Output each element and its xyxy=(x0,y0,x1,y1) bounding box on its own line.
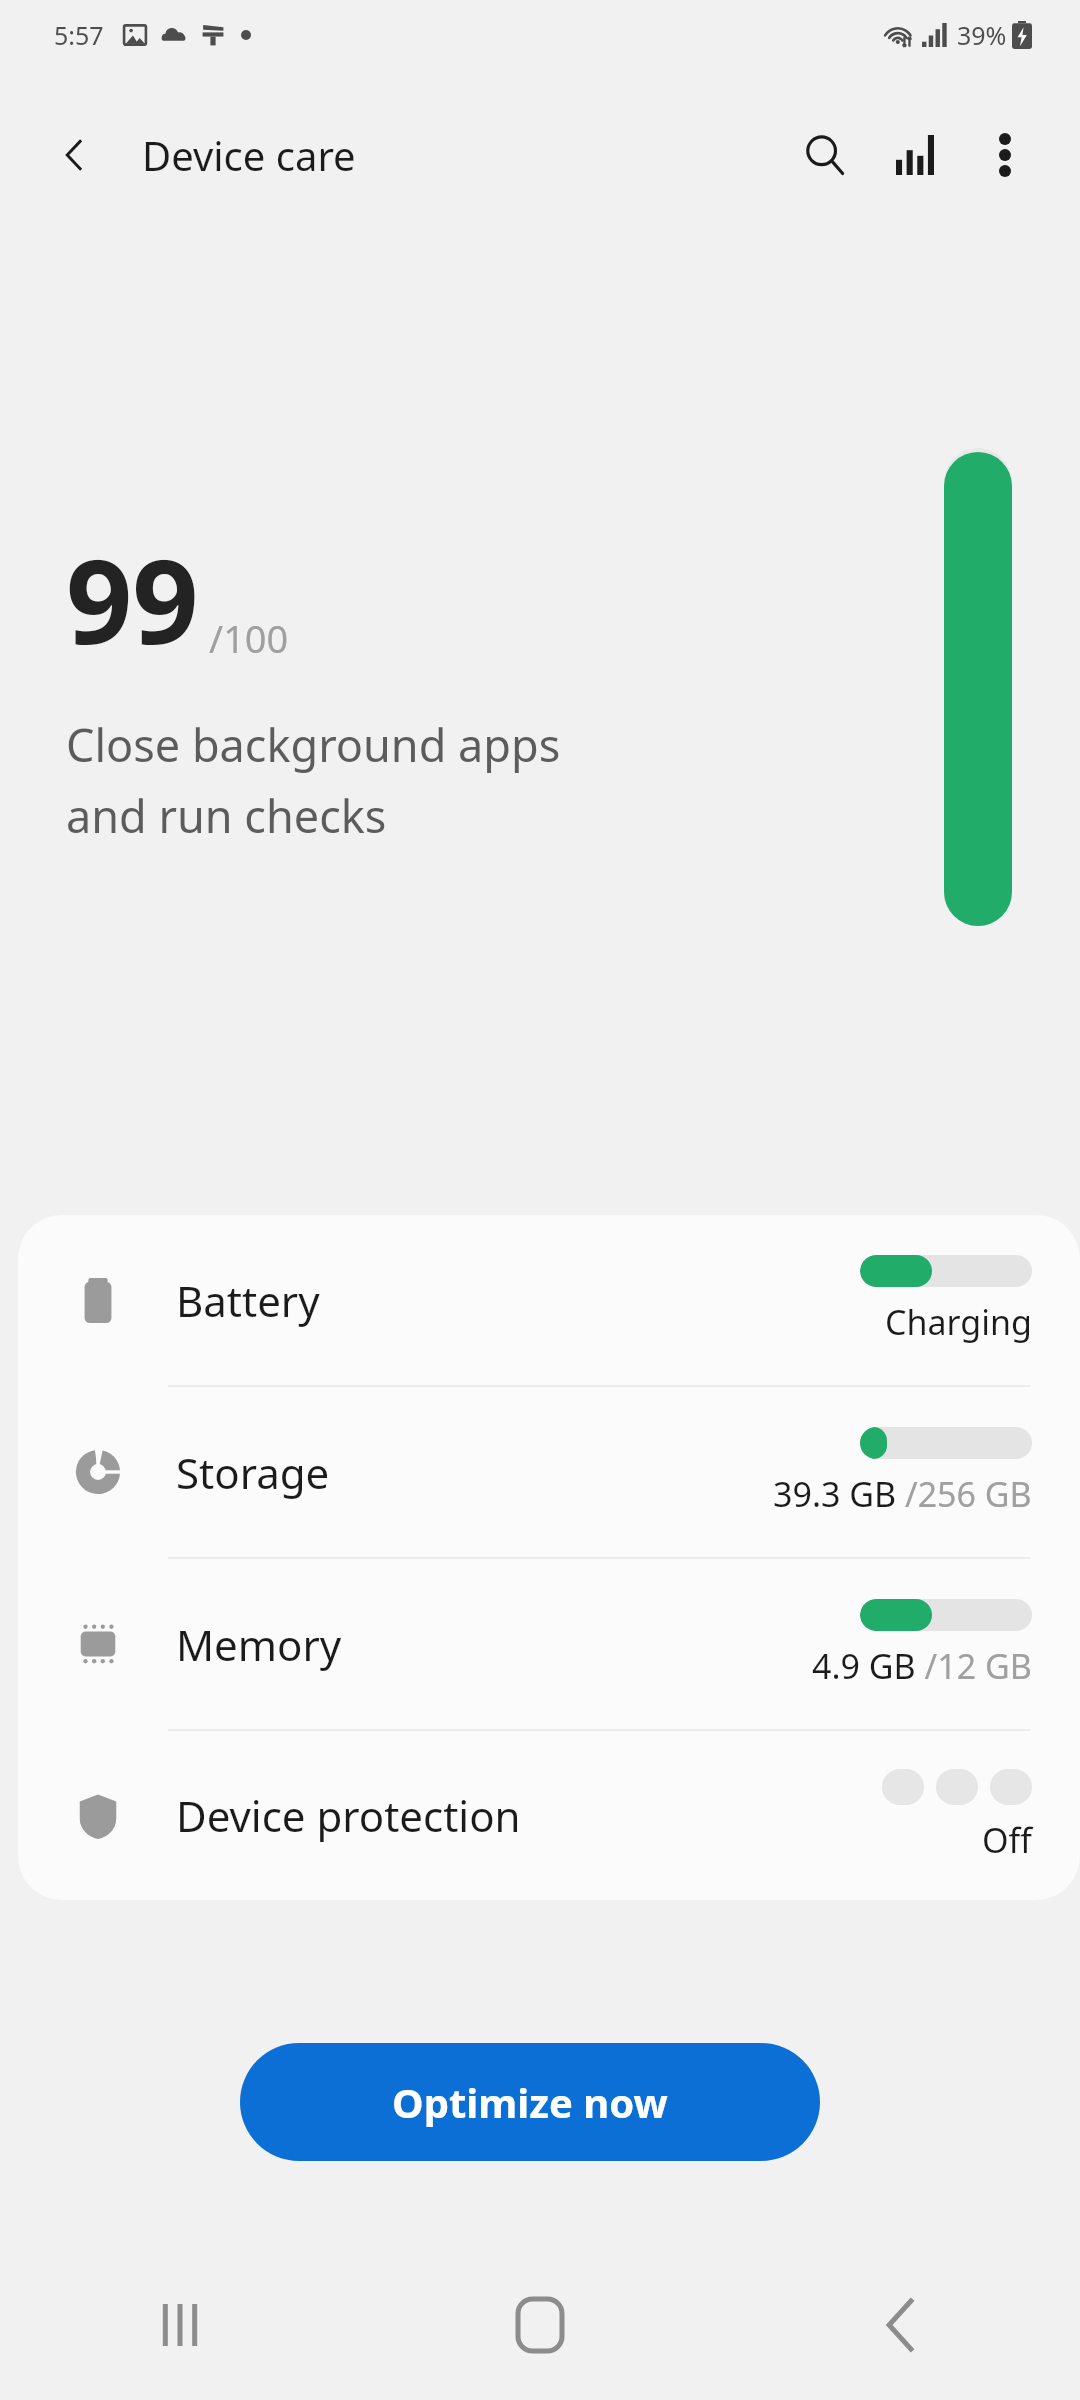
button[interactable]: Back xyxy=(720,2250,1080,2400)
staticText: Storage xyxy=(176,1444,330,1501)
staticText: Memory xyxy=(176,1616,342,1673)
button[interactable]: Recent apps xyxy=(0,2250,360,2400)
staticText: Battery xyxy=(176,1272,320,1329)
button[interactable]: Battery xyxy=(18,1215,1080,1385)
staticText: Charging xyxy=(885,1299,1032,1345)
button[interactable]: Statistics xyxy=(870,110,960,200)
staticText: 5:57 xyxy=(54,18,104,52)
button[interactable]: Search xyxy=(780,110,870,200)
button[interactable]: Home xyxy=(360,2250,720,2400)
button[interactable]: Storage xyxy=(18,1387,1080,1557)
button[interactable]: Navigate up xyxy=(44,125,104,185)
staticText: and run checks xyxy=(66,785,387,846)
staticText: /100 xyxy=(209,612,289,664)
staticText: Close background apps xyxy=(66,714,561,775)
staticText: Device protection xyxy=(176,1787,521,1844)
button[interactable]: Optimize now xyxy=(240,2043,820,2161)
staticText: 39.3 GB /256 GB xyxy=(773,1471,1032,1517)
button[interactable]: Memory xyxy=(18,1559,1080,1729)
staticText: 4.9 GB /12 GB xyxy=(812,1643,1032,1689)
staticText: Off xyxy=(982,1817,1032,1863)
button[interactable]: More options xyxy=(960,110,1050,200)
staticText: Device care xyxy=(142,128,356,182)
staticText: 39% xyxy=(957,18,1007,52)
button[interactable]: Device protection xyxy=(18,1731,1080,1900)
staticText: 99 xyxy=(66,520,199,678)
staticText: Optimize now xyxy=(392,2075,668,2129)
